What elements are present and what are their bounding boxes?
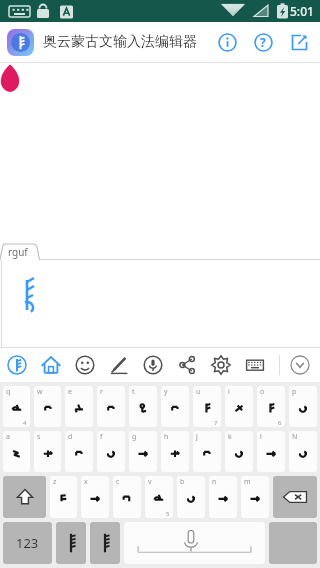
button[interactable]: f [97, 431, 125, 472]
button[interactable]: Info [209, 24, 245, 60]
button[interactable]: Keyboard layout [238, 348, 272, 382]
staticText: 7 [214, 419, 218, 427]
button[interactable]: h [161, 431, 189, 472]
button[interactable]: u [193, 386, 221, 427]
button[interactable]: e [65, 386, 93, 427]
staticText: e [68, 387, 72, 397]
button[interactable]: k [225, 431, 253, 472]
button[interactable]: N [289, 431, 317, 472]
staticText: u [196, 387, 201, 397]
button[interactable]: App icon [7, 29, 34, 56]
staticText: q [6, 387, 11, 397]
button[interactable]: z [50, 476, 77, 518]
staticText: v [148, 477, 152, 487]
staticText: g [132, 432, 137, 442]
button[interactable]: Settings [204, 348, 238, 382]
staticText: l [260, 432, 262, 442]
button[interactable]: r [97, 386, 125, 427]
button[interactable]: Space [124, 522, 265, 564]
button[interactable] [0, 260, 320, 348]
staticText: m [244, 477, 251, 487]
staticText: 5:01 [290, 3, 314, 19]
staticText: k [228, 432, 232, 442]
button[interactable]: j [193, 431, 221, 472]
button[interactable]: y [161, 386, 189, 427]
staticText: t [132, 387, 135, 397]
staticText: p [292, 387, 297, 397]
staticText: o [260, 387, 265, 397]
button[interactable]: Symbol 2 [90, 522, 120, 564]
staticText: s [37, 432, 41, 442]
staticText: n [212, 477, 217, 487]
staticText: 6 [278, 419, 282, 427]
button[interactable]: o [257, 386, 285, 427]
button[interactable]: m [241, 476, 269, 518]
staticText: ? [260, 34, 266, 50]
button[interactable]: c [113, 476, 141, 518]
staticText: 5 [166, 510, 170, 518]
staticText: d [68, 432, 73, 442]
button[interactable]: Backspace [273, 476, 317, 518]
button[interactable]: Home [34, 348, 68, 382]
staticText: b [180, 477, 185, 487]
button[interactable]: x [81, 476, 109, 518]
staticText: f [100, 432, 103, 442]
staticText: a [6, 432, 10, 442]
button[interactable]: Voice input [136, 348, 170, 382]
staticText: 123 [16, 534, 39, 552]
staticText: x [84, 477, 88, 487]
staticText: 4 [23, 419, 27, 427]
staticText: rguf [8, 245, 28, 259]
staticText: j [196, 432, 198, 442]
button[interactable]: w [34, 386, 61, 427]
staticText: N [292, 432, 298, 442]
button[interactable]: v [145, 476, 173, 518]
button[interactable]: Share [281, 24, 317, 60]
button[interactable]: i [225, 386, 253, 427]
staticText: w [37, 387, 43, 397]
button[interactable]: t [129, 386, 157, 427]
button[interactable]: Handwriting [102, 348, 136, 382]
button[interactable]: p [289, 386, 317, 427]
button[interactable]: Emoji [68, 348, 102, 382]
button[interactable]: n [209, 476, 237, 518]
button[interactable]: Collapse keyboard [280, 348, 320, 382]
staticText: y [164, 387, 168, 397]
button[interactable]: g [129, 431, 157, 472]
button[interactable]: Share [170, 348, 204, 382]
button[interactable]: 123 [3, 522, 52, 564]
button[interactable]: q [3, 386, 30, 427]
staticText: c [116, 477, 120, 487]
staticText: i [228, 387, 230, 397]
staticText: r [100, 387, 103, 397]
button[interactable]: b [177, 476, 205, 518]
button[interactable]: Mongolian input [0, 348, 34, 382]
staticText: z [53, 477, 57, 487]
button[interactable]: Help [245, 24, 281, 60]
button[interactable]: d [65, 431, 93, 472]
staticText: 奥云蒙古文输入法编辑器 [43, 33, 197, 51]
button[interactable]: s [34, 431, 61, 472]
staticText: h [164, 432, 169, 442]
button[interactable]: l [257, 431, 285, 472]
button[interactable]: Shift [3, 476, 46, 518]
button[interactable]: Symbol 1 [56, 522, 86, 564]
button[interactable]: a [3, 431, 30, 472]
